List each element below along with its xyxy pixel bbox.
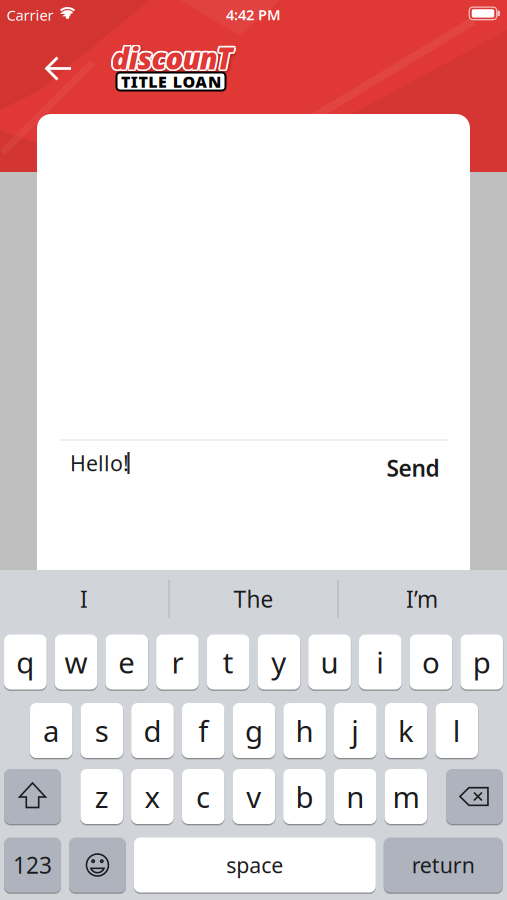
staticText: 123 [13,850,52,880]
staticText: o [422,642,440,681]
staticText: 4:42 PM [226,5,281,24]
staticText: discounT [111,38,232,77]
staticText: m [392,777,419,816]
button[interactable]: u [308,634,351,689]
button[interactable]: t [207,634,249,689]
staticText: b [295,777,313,816]
button[interactable]: q [4,634,47,689]
staticText: h [296,711,314,750]
staticText: z [95,777,109,816]
staticText: f [198,711,208,750]
staticText: v [246,777,261,816]
button[interactable]: I [4,574,164,624]
staticText: p [473,642,491,681]
button[interactable]: n [334,769,376,824]
button[interactable]: i [359,634,402,689]
staticText: discounT [111,37,232,76]
button[interactable]: return [384,837,503,892]
button[interactable]: f [182,703,224,758]
staticText: Send [386,453,439,483]
button[interactable]: space [134,837,376,892]
button[interactable]: Emoji [69,837,126,892]
staticText: l [453,711,461,750]
staticText: discounT [110,38,231,77]
button[interactable]: z [80,769,123,824]
staticText: k [398,711,414,750]
staticText: u [321,642,339,681]
button[interactable]: k [385,703,427,758]
staticText: q [16,642,34,681]
staticText: n [346,777,364,816]
button[interactable]: c [182,769,224,824]
button[interactable]: x [131,769,174,824]
button[interactable]: v [232,769,275,824]
staticText: g [245,711,263,750]
staticText: e [118,642,135,681]
staticText: discounT [110,40,231,79]
button[interactable]: p [460,634,503,689]
staticText: r [171,642,183,681]
staticText: j [351,711,359,750]
staticText: x [144,777,160,816]
button[interactable]: b [283,769,326,824]
button[interactable]: Back [45,56,72,81]
staticText: I [80,584,88,614]
button[interactable]: d [131,703,174,758]
staticText: The [233,584,273,614]
staticText: a [43,711,59,750]
staticText: c [196,777,210,816]
button[interactable]: e [105,634,148,689]
button[interactable]: y [258,634,300,689]
staticText: discounT [111,40,232,79]
staticText: y [271,642,286,681]
staticText: s [95,711,109,750]
button[interactable]: g [233,703,275,758]
button[interactable]: Send [386,453,439,483]
staticText: discounT [113,38,234,77]
staticText: discounT [110,37,231,76]
staticText: discounT [113,37,234,76]
button[interactable]: l [435,703,478,758]
staticText: space [226,851,283,879]
button[interactable]: m [385,769,427,824]
staticText: d [143,711,161,750]
staticText: discounT [113,40,234,79]
button[interactable]: The [173,574,333,624]
button[interactable]: I’m [342,574,502,624]
staticText: I’m [406,584,438,614]
button[interactable]: s [80,703,123,758]
staticText: return [412,851,475,879]
button[interactable]: j [334,703,377,758]
button[interactable]: Delete [446,769,503,824]
staticText: TITLE LOAN [121,71,221,92]
staticText: w [64,642,87,681]
button[interactable]: a [30,703,72,758]
staticText: i [376,642,384,681]
staticText: Hello! [70,449,129,477]
button[interactable]: r [156,634,199,689]
button[interactable]: 123 [4,837,61,892]
button[interactable]: h [283,703,326,758]
button[interactable]: Shift [4,769,61,824]
staticText: Carrier [6,5,53,25]
staticText: t [223,642,234,681]
button[interactable]: o [410,634,452,689]
button[interactable]: w [55,634,97,689]
